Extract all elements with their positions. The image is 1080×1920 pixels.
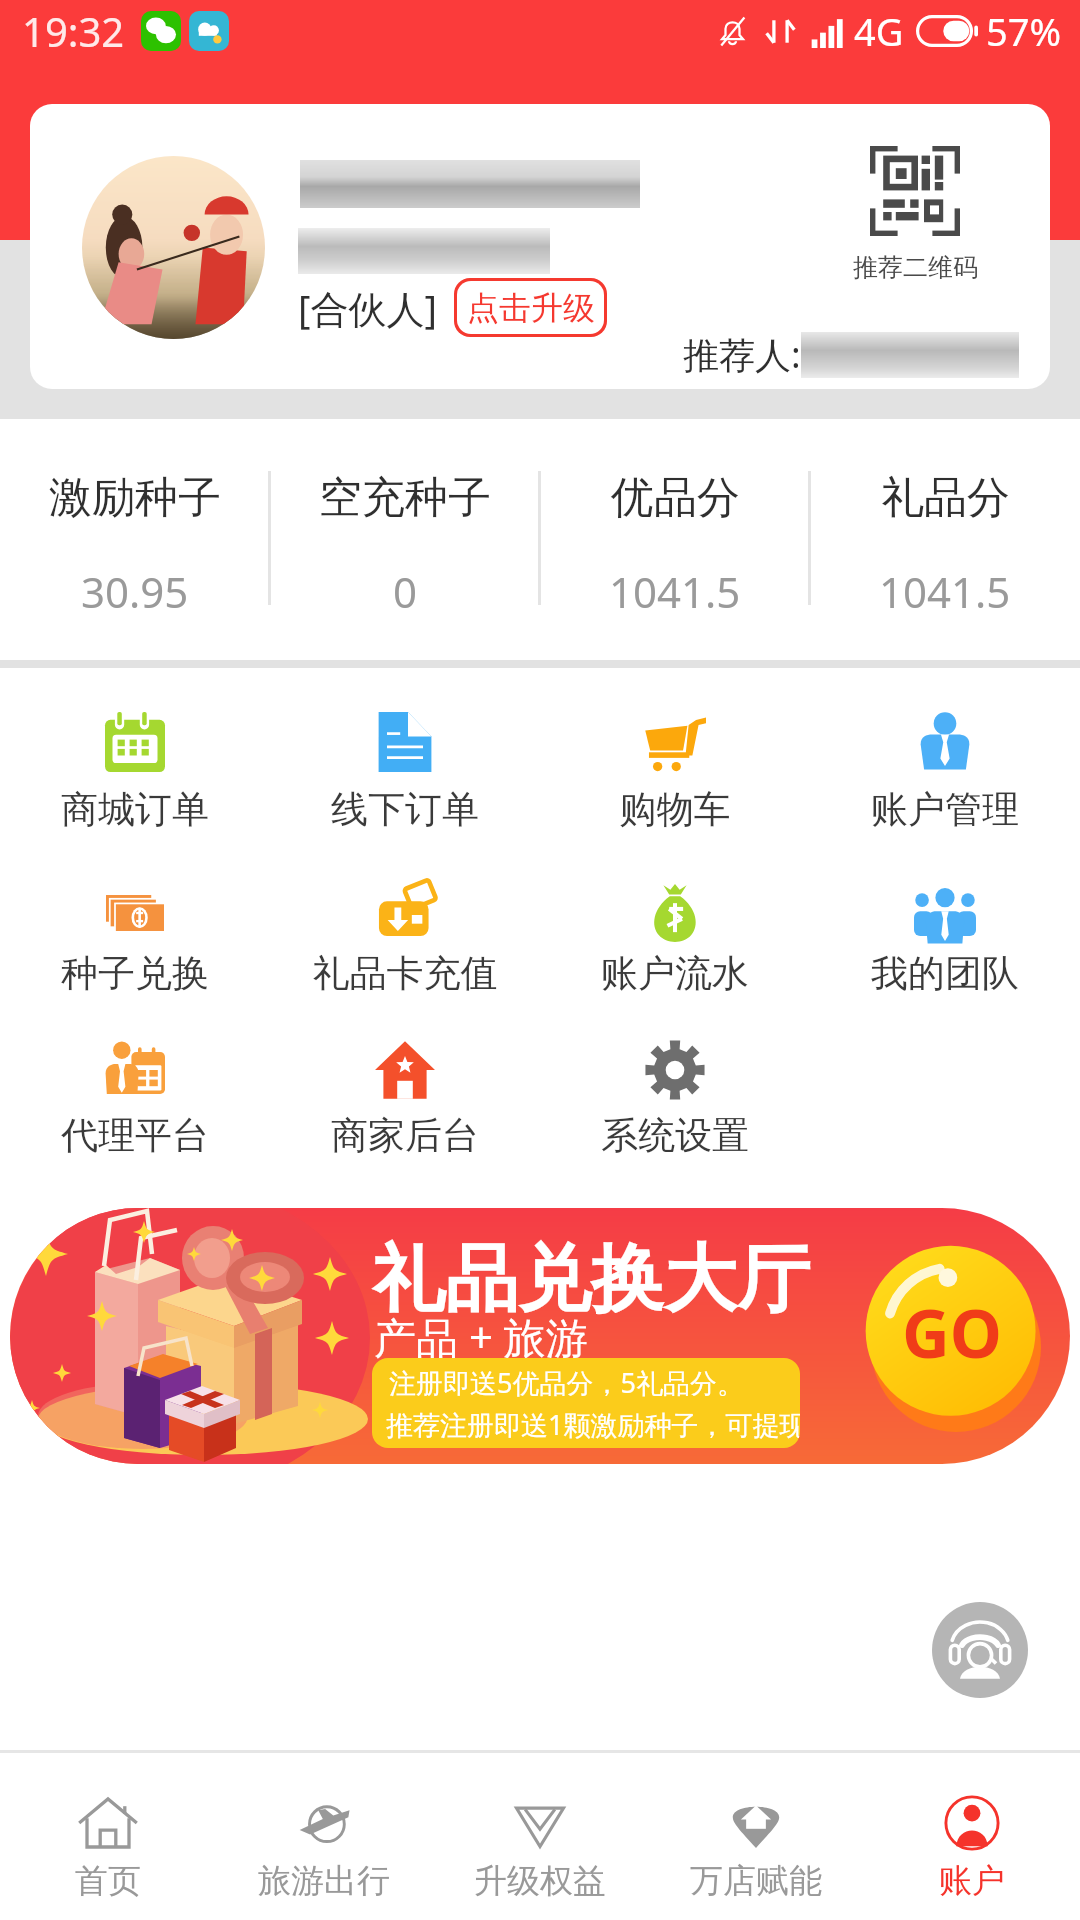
staticText: 代理平台 xyxy=(0,1112,270,1159)
staticText: 购物车 xyxy=(540,786,810,833)
staticText: 1041.5 xyxy=(879,563,1011,620)
staticText: 57% xyxy=(986,5,1062,57)
staticText: 30.95 xyxy=(81,563,189,620)
button[interactable] xyxy=(555,698,795,828)
staticText: 19:32 xyxy=(22,4,125,58)
staticText: 1041.5 xyxy=(609,563,741,620)
button[interactable] xyxy=(432,1753,648,1920)
staticText: 空充种子 xyxy=(319,471,491,525)
staticText: 注册即送5优品分，5礼品分。 xyxy=(389,1364,744,1401)
button[interactable] xyxy=(864,1753,1080,1920)
staticText: 产品 + 旅游 xyxy=(374,1308,588,1365)
staticText: 0 xyxy=(393,563,418,620)
button[interactable]: 礼品分 xyxy=(810,419,1080,660)
staticText: 激励种子 xyxy=(49,471,221,525)
staticText: 种子兑换 xyxy=(0,950,270,997)
staticText: 礼品分 xyxy=(881,471,1010,525)
staticText: 商城订单 xyxy=(0,786,270,833)
staticText: 点击升级 xyxy=(467,288,595,328)
button[interactable]: 客服 xyxy=(932,1602,1028,1698)
button[interactable]: 礼品兑换大厅 xyxy=(10,1208,1070,1464)
button[interactable]: 优品分 xyxy=(540,419,810,660)
staticText: 礼品兑换大厅 xyxy=(372,1234,810,1326)
button[interactable]: 点击升级 xyxy=(457,281,604,334)
staticText: 我的团队 xyxy=(810,950,1080,997)
button[interactable] xyxy=(82,156,265,339)
staticText: 万店赋能 xyxy=(648,1860,864,1902)
staticText: GO xyxy=(902,1287,1002,1377)
button[interactable] xyxy=(825,870,1065,1000)
button[interactable] xyxy=(555,870,795,1000)
button[interactable] xyxy=(0,1753,216,1920)
staticText: 4G xyxy=(854,5,904,57)
button[interactable] xyxy=(285,870,525,1000)
staticText: 首页 xyxy=(0,1860,216,1902)
button[interactable]: 激励种子 xyxy=(0,419,270,660)
button[interactable] xyxy=(285,1026,525,1156)
staticText: 旅游出行 xyxy=(216,1860,432,1902)
button[interactable] xyxy=(15,870,255,1000)
button[interactable]: 推荐二维码 xyxy=(840,146,990,283)
button[interactable] xyxy=(216,1753,432,1920)
staticText: [合伙人] xyxy=(298,282,438,334)
button[interactable] xyxy=(648,1753,864,1920)
button[interactable] xyxy=(15,698,255,828)
staticText: 系统设置 xyxy=(540,1112,810,1159)
button[interactable] xyxy=(15,1026,255,1156)
staticText: 优品分 xyxy=(611,471,740,525)
staticText: 推荐二维码 xyxy=(853,252,978,283)
button[interactable] xyxy=(555,1026,795,1156)
staticText: 升级权益 xyxy=(432,1860,648,1902)
button[interactable] xyxy=(285,698,525,828)
staticText: 账户 xyxy=(864,1860,1080,1902)
button[interactable] xyxy=(825,698,1065,828)
button[interactable]: 空充种子 xyxy=(270,419,540,660)
staticText: 线下订单 xyxy=(270,786,540,833)
staticText: 礼品卡充值 xyxy=(270,950,540,997)
staticText: 账户管理 xyxy=(810,786,1080,833)
staticText: 账户流水 xyxy=(540,950,810,997)
staticText: 推荐人: xyxy=(683,330,801,379)
staticText: 商家后台 xyxy=(270,1112,540,1159)
staticText: 推荐注册即送1颗激励种子，可提现 xyxy=(386,1406,800,1443)
